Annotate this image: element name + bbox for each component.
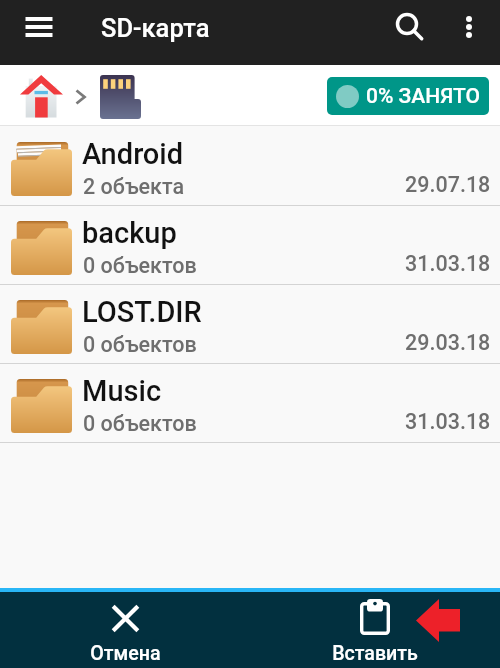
staticText: 2 объекта [83, 174, 185, 199]
button[interactable]: Search [380, 0, 436, 55]
staticText: backup [82, 216, 177, 250]
staticText: SD-карта [101, 13, 210, 43]
button[interactable]: Music [0, 364, 500, 443]
staticText: Android [82, 137, 184, 171]
button[interactable]: Menu [10, 0, 68, 56]
staticText: 31.03.18 [405, 409, 491, 434]
staticText: 0% ЗАНЯТО [366, 84, 480, 109]
staticText: 0 объектов [83, 253, 197, 278]
staticText: 29.07.18 [405, 172, 491, 197]
button[interactable]: SD card [90, 66, 151, 127]
button[interactable]: More options [439, 0, 495, 55]
button[interactable]: backup [0, 206, 500, 285]
staticText: Вставить [332, 642, 418, 665]
button[interactable]: Вставить [250, 592, 500, 668]
staticText: Отмена [90, 642, 161, 665]
staticText: LOST.DIR [82, 295, 202, 329]
button[interactable]: LOST.DIR [0, 285, 500, 364]
button[interactable]: Отмена [0, 592, 250, 668]
button[interactable]: Android [0, 127, 500, 206]
staticText: 0 объектов [83, 332, 197, 357]
staticText: Music [82, 374, 162, 408]
button[interactable]: Home [11, 68, 72, 129]
staticText: 0 объектов [83, 411, 197, 436]
staticText: 29.03.18 [405, 330, 491, 355]
button[interactable]: 0% ЗАНЯТО [327, 77, 489, 115]
staticText: 31.03.18 [405, 251, 491, 276]
